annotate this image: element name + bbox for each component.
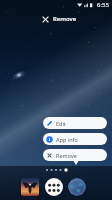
staticText: 6:55 xyxy=(97,1,109,9)
staticText: Remove xyxy=(56,152,77,159)
button[interactable]: All apps xyxy=(45,178,63,196)
button[interactable]: Remove xyxy=(43,149,107,161)
other: Remove xyxy=(42,16,49,23)
staticText: Remove xyxy=(53,15,77,23)
staticText: App info xyxy=(56,136,78,143)
button[interactable]: App info xyxy=(43,133,107,145)
button[interactable]: Remove xyxy=(42,15,77,23)
button[interactable]: Eagle app xyxy=(21,178,39,196)
button[interactable]: Edit xyxy=(43,117,107,129)
staticText: Edit xyxy=(56,120,66,127)
button[interactable]: Browser xyxy=(68,178,86,196)
